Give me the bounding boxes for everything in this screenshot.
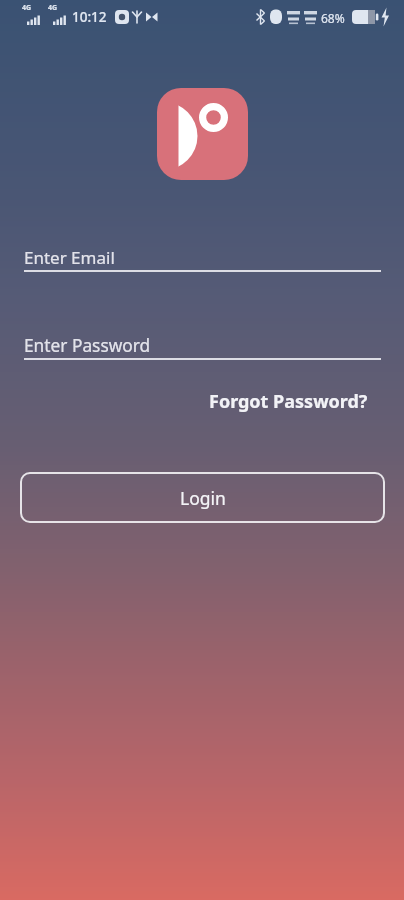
button[interactable]: Enter Password [24, 332, 381, 360]
staticText: Enter Email [24, 246, 115, 269]
button[interactable]: Login [20, 472, 385, 523]
staticText: Forgot Password? [209, 389, 368, 414]
button[interactable]: Forgot Password? [209, 389, 368, 414]
staticText: Enter Password [24, 334, 151, 358]
staticText: 4G [22, 3, 32, 13]
staticText: 10:12 [72, 8, 107, 26]
button[interactable]: Enter Email [24, 244, 381, 272]
staticText: 4G [48, 3, 58, 13]
staticText: 68% [321, 10, 345, 26]
staticText: Login [180, 486, 226, 510]
